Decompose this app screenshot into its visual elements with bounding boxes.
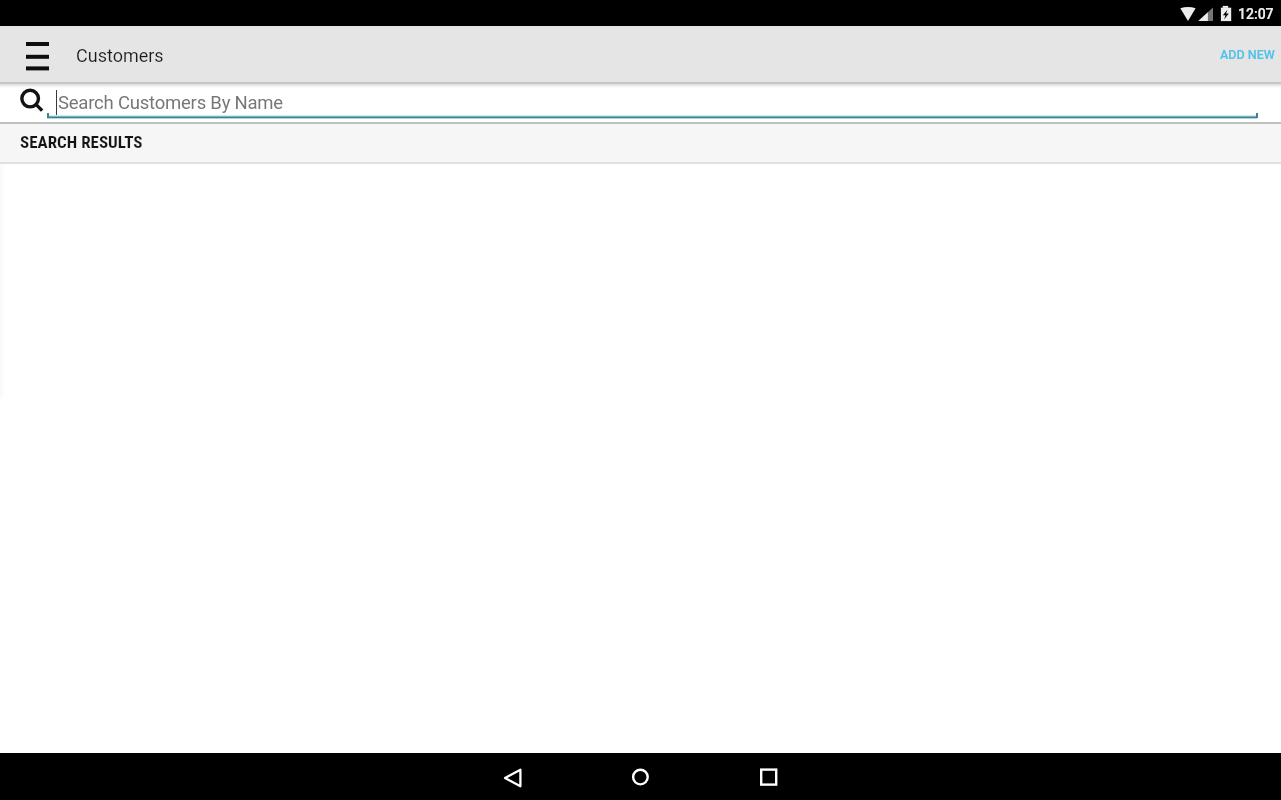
staticText: Search Customers By Name: [58, 92, 283, 114]
staticText: ADD NEW: [1220, 47, 1275, 62]
staticText: SEARCH RESULTS: [20, 132, 143, 152]
other: Search: [18, 86, 46, 114]
button[interactable]: Back: [488, 753, 536, 800]
button[interactable]: Home: [616, 753, 664, 800]
button[interactable]: Search: [0, 84, 1281, 122]
button[interactable]: Recent apps: [745, 753, 793, 800]
button[interactable]: ADD NEW: [1212, 26, 1281, 82]
staticText: 12:07: [1238, 6, 1274, 22]
staticText: Customers: [76, 45, 164, 66]
button[interactable]: Open navigation drawer: [14, 26, 62, 82]
